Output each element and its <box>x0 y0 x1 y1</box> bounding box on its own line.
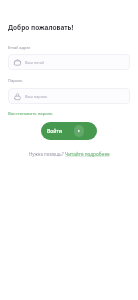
staticText: Ваш пароль <box>25 94 48 99</box>
staticText: Нужна помощь? <box>29 151 65 157</box>
staticText: Войти <box>47 128 63 135</box>
staticText: Пароль <box>8 78 23 83</box>
staticText: Добро пожаловать! <box>8 23 74 32</box>
staticText: Ваш email <box>25 60 44 65</box>
button[interactable]: Ваш пароль <box>8 88 130 104</box>
button[interactable]: Ваш email <box>8 54 130 70</box>
button[interactable]: Читайте подробнее <box>65 151 110 157</box>
staticText: Email адрес <box>8 45 31 50</box>
button[interactable]: Восстановить пароль <box>8 110 53 116</box>
button[interactable]: Войти <box>41 122 97 140</box>
